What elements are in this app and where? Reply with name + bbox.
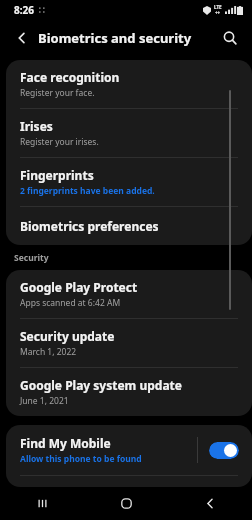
staticText: 8:26 [14, 3, 34, 17]
button[interactable]: Home [84, 487, 168, 520]
staticText: Google Play system update [20, 377, 182, 393]
button[interactable]: Recent apps [0, 487, 84, 520]
staticText: Google Play Protect [20, 279, 138, 295]
button[interactable]: Theft protection [6, 476, 252, 487]
button[interactable]: Google Play Protect [6, 270, 252, 318]
staticText: ++ [215, 10, 221, 16]
button[interactable]: Back [8, 24, 36, 52]
staticText: Apps scanned at 6:42 AM [20, 297, 121, 309]
staticText: Register your irises. [20, 136, 99, 148]
staticText: June 1, 2021 [20, 395, 69, 407]
button[interactable]: Google Play system update [6, 368, 252, 416]
staticText: Fingerprints [20, 167, 94, 183]
staticText: Register your face. [20, 87, 95, 99]
staticText: Irises [20, 118, 53, 134]
button[interactable]: Find My Mobile toggle [209, 442, 239, 459]
staticText: Biometrics preferences [20, 218, 159, 234]
button[interactable]: Fingerprints [6, 158, 252, 206]
staticText: 2 fingerprints have been added. [20, 185, 155, 197]
button[interactable]: Irises [6, 109, 252, 157]
button[interactable]: Search [216, 24, 244, 52]
staticText: March 1, 2022 [20, 346, 77, 358]
button[interactable]: Face recognition [6, 60, 252, 108]
staticText: Security update [20, 328, 115, 344]
button[interactable]: Find My Mobile [6, 425, 252, 475]
button[interactable]: Back [168, 487, 252, 520]
staticText: Allow this phone to be found [20, 453, 142, 465]
staticText: Biometrics and security [38, 29, 192, 47]
button[interactable]: Security update [6, 319, 252, 367]
staticText: Security [14, 252, 49, 264]
staticText: Face recognition [20, 69, 120, 85]
button[interactable]: Biometrics preferences [6, 207, 252, 245]
staticText: Find My Mobile [20, 435, 111, 451]
staticText: LTE [214, 4, 222, 10]
